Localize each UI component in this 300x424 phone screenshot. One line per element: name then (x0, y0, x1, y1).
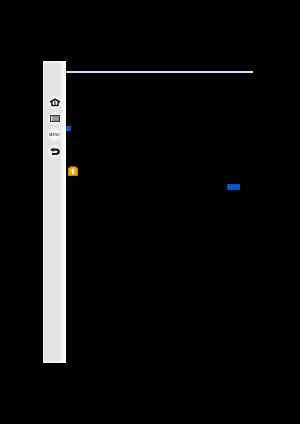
button[interactable]: Back (48, 145, 61, 158)
button[interactable]: Home (48, 96, 61, 109)
button[interactable]: Open link (227, 184, 240, 190)
staticText: MENU (49, 132, 60, 137)
button[interactable]: Recent apps (48, 112, 61, 125)
button[interactable]: Menu (48, 128, 61, 141)
button[interactable]: Tip (68, 166, 78, 176)
